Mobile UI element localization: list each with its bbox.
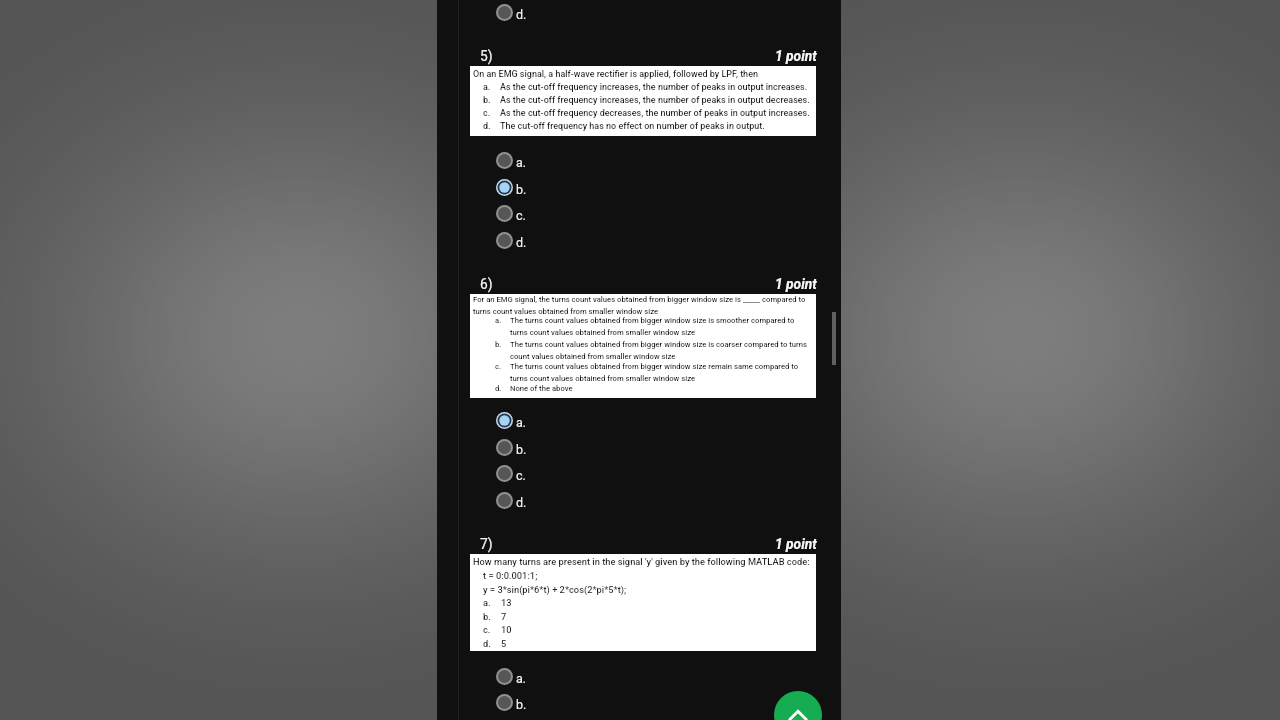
button[interactable]: Scroll to top <box>774 691 822 720</box>
button[interactable]: a. <box>493 407 563 433</box>
staticText: The cut-off frequency has no effect on n… <box>500 121 830 132</box>
staticText: 7) <box>480 536 493 552</box>
staticText: 1 point <box>775 48 817 64</box>
staticText: 6) <box>480 276 493 292</box>
staticText: d. <box>483 638 491 649</box>
staticText: 5 <box>501 638 507 649</box>
button[interactable]: d. <box>493 487 563 513</box>
staticText: As the cut-off frequency increases, the … <box>500 95 830 106</box>
staticText: a. <box>495 316 502 325</box>
staticText: b. <box>516 697 527 712</box>
button[interactable]: b. <box>493 174 563 200</box>
staticText: c. <box>516 208 526 223</box>
staticText: b. <box>495 340 502 349</box>
staticText: a. <box>483 597 491 608</box>
button[interactable]: d. <box>493 0 563 25</box>
button[interactable]: d. <box>493 227 563 253</box>
staticText: d. <box>516 495 527 510</box>
staticText: 10 <box>501 624 512 635</box>
button[interactable]: b. <box>493 689 563 715</box>
staticText: d. <box>516 7 527 22</box>
staticText: a. <box>516 671 527 686</box>
staticText: d. <box>495 384 502 393</box>
staticText: None of the above <box>510 384 573 393</box>
staticText: d. <box>516 235 527 250</box>
staticText: c. <box>516 468 526 483</box>
staticText: a. <box>516 155 527 170</box>
staticText: For an EMG signal, the turns count value… <box>473 295 817 316</box>
staticText: On an EMG signal, a half-wave rectifier … <box>473 69 758 80</box>
staticText: b. <box>516 182 527 197</box>
staticText: 5) <box>480 48 493 64</box>
staticText: y = 3*sin(pi*6*t) + 2*cos(2*pi*5*t); <box>483 584 627 595</box>
staticText: d. <box>483 121 491 132</box>
staticText: c. <box>483 108 491 119</box>
button[interactable]: c. <box>493 460 563 486</box>
button[interactable]: b. <box>493 434 563 460</box>
button[interactable]: a. <box>493 147 563 173</box>
staticText: t = 0:0.001:1; <box>483 570 538 581</box>
staticText: c. <box>483 624 491 635</box>
staticText: a. <box>483 82 491 93</box>
staticText: b. <box>483 95 491 106</box>
staticText: c. <box>495 362 502 371</box>
staticText: b. <box>516 442 527 457</box>
staticText: 1 point <box>775 536 817 552</box>
staticText: The turns count values obtained from big… <box>510 362 810 383</box>
staticText: As the cut-off frequency increases, the … <box>500 82 830 93</box>
staticText: a. <box>516 415 527 430</box>
button[interactable]: c. <box>493 200 563 226</box>
staticText: As the cut-off frequency decreases, the … <box>500 108 830 119</box>
staticText: How many turns are present in the signal… <box>473 556 810 567</box>
staticText: 1 point <box>775 276 817 292</box>
staticText: The turns count values obtained from big… <box>510 340 820 361</box>
staticText: 13 <box>501 597 512 608</box>
button[interactable]: a. <box>493 663 563 689</box>
staticText: The turns count values obtained from big… <box>510 316 806 337</box>
staticText: b. <box>483 611 491 622</box>
staticText: 7 <box>501 611 507 622</box>
